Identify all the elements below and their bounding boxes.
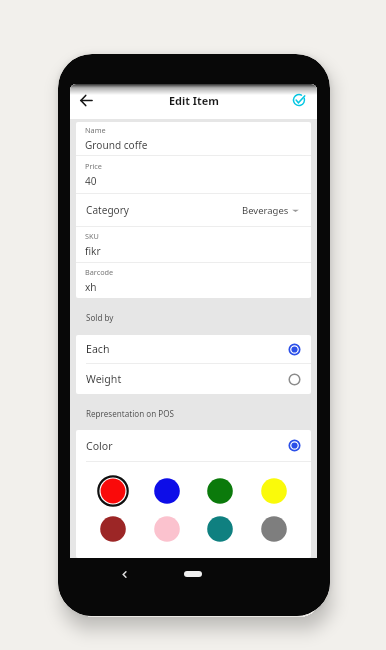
button[interactable]: SKU: [76, 227, 311, 262]
button[interactable]: Color swatch: [97, 475, 129, 507]
button[interactable]: Color swatch: [258, 513, 290, 545]
staticText: Beverages: [242, 204, 289, 217]
staticText: Each: [86, 342, 110, 356]
button[interactable]: Color swatch: [151, 475, 183, 507]
staticText: Ground coffe: [85, 138, 148, 152]
button[interactable]: Back: [75, 89, 98, 112]
staticText: Sold by: [86, 312, 114, 323]
button[interactable]: Barcode: [76, 263, 311, 298]
button[interactable]: Color swatch: [204, 475, 236, 507]
button[interactable]: Back: [115, 565, 133, 583]
button[interactable]: Home: [184, 571, 202, 577]
staticText: Color: [86, 439, 113, 453]
button[interactable]: Color swatch: [258, 475, 290, 507]
staticText: Edit Item: [169, 93, 219, 108]
staticText: xh: [85, 280, 97, 294]
staticText: Category: [86, 203, 130, 217]
staticText: Barcode: [85, 267, 114, 277]
button[interactable]: Each: [76, 335, 311, 363]
staticText: 40: [85, 174, 97, 188]
staticText: Representation on POS: [86, 408, 174, 419]
button[interactable]: Weight: [76, 364, 311, 394]
button[interactable]: Color swatch: [204, 513, 236, 545]
button[interactable]: Category: [76, 194, 311, 226]
staticText: Weight: [86, 372, 122, 386]
staticText: fikr: [85, 244, 101, 258]
button[interactable]: Price: [76, 156, 311, 193]
staticText: SKU: [85, 231, 99, 241]
button[interactable]: Color swatch: [97, 513, 129, 545]
button[interactable]: Color swatch: [151, 513, 183, 545]
button[interactable]: Save: [291, 92, 307, 108]
staticText: Price: [85, 161, 102, 171]
button[interactable]: Color: [76, 430, 311, 461]
staticText: Name: [85, 125, 106, 135]
button[interactable]: Name: [76, 122, 311, 155]
